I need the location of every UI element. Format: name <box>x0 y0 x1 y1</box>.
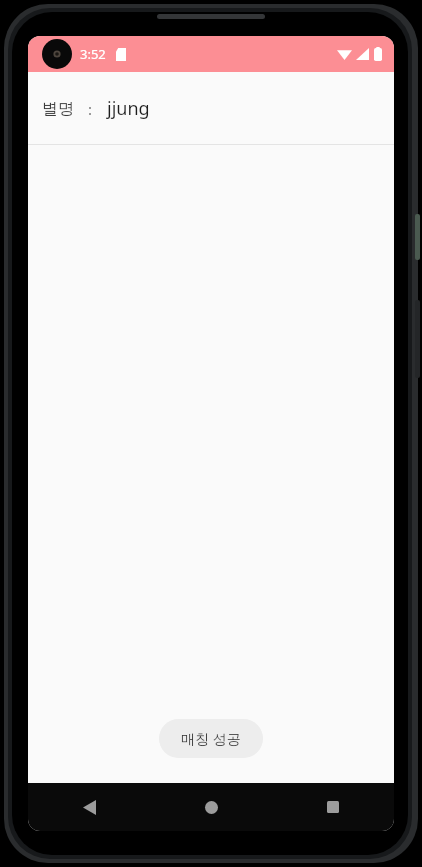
staticText: jjung <box>107 96 150 121</box>
staticText: : <box>88 99 93 119</box>
button[interactable]: 매칭 성공 <box>159 719 263 758</box>
staticText: 3:52 <box>80 45 106 63</box>
button[interactable]: Home <box>150 783 272 831</box>
button[interactable]: Back <box>28 783 150 831</box>
button[interactable]: Recent apps <box>272 783 394 831</box>
staticText: 매칭 성공 <box>181 729 241 748</box>
staticText: 별명 <box>42 99 74 119</box>
